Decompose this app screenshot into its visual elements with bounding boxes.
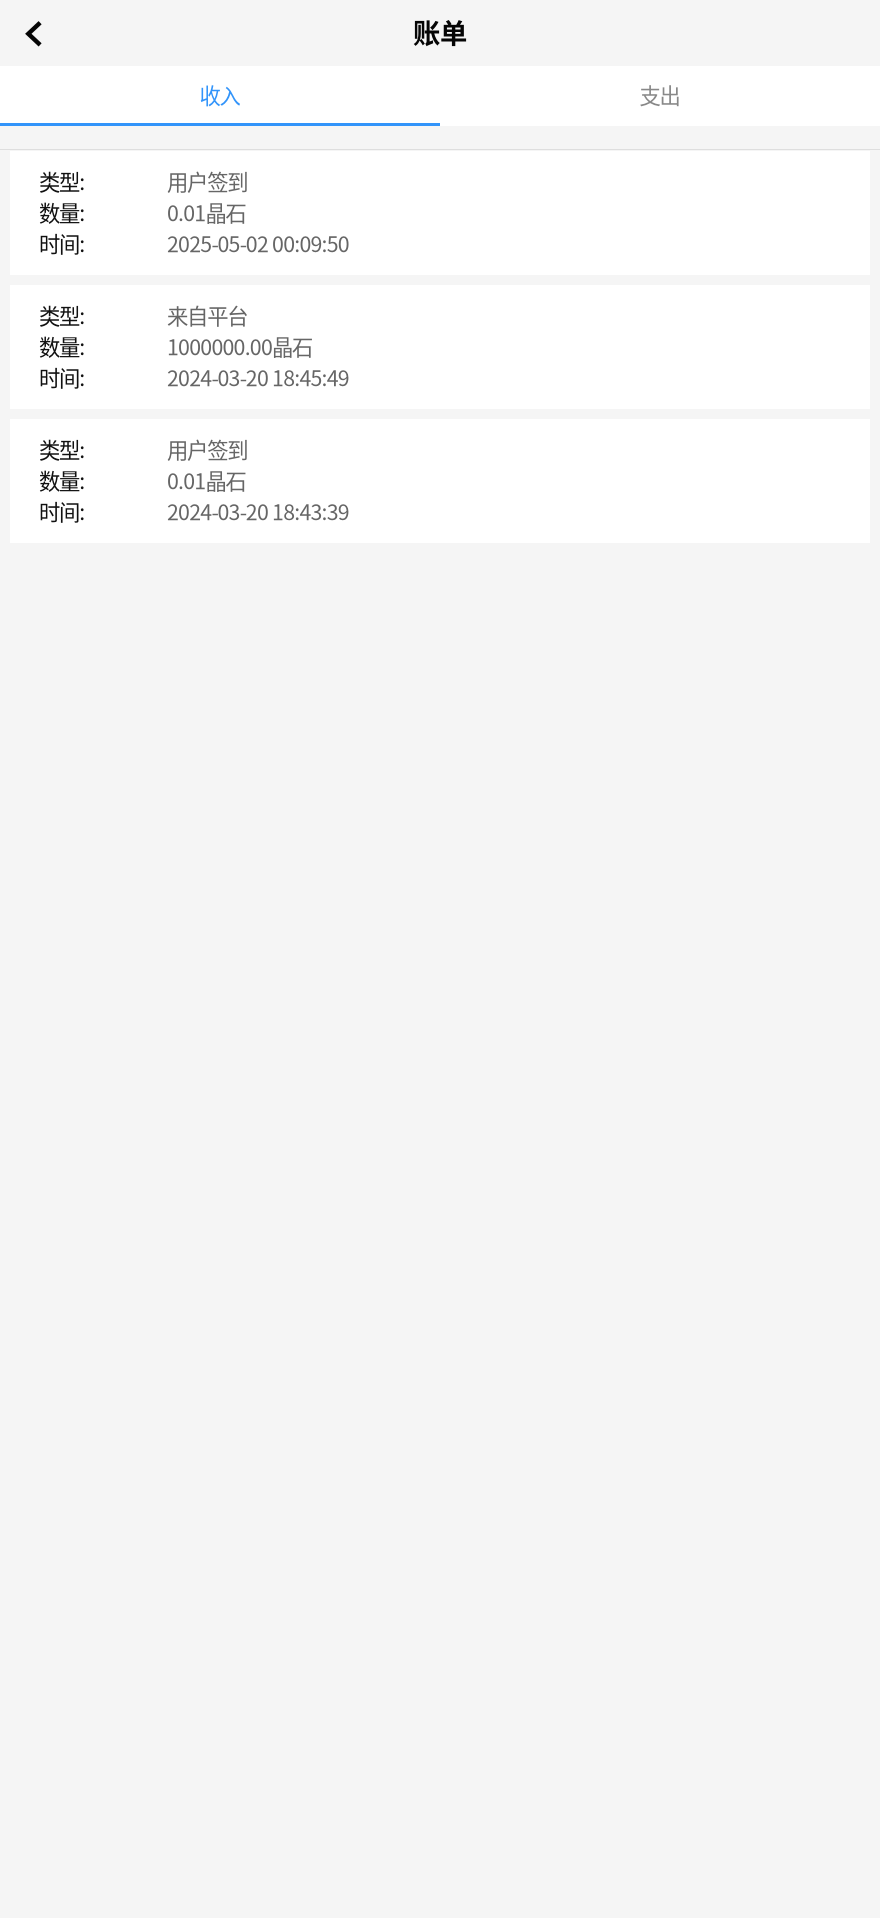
staticText: 用户签到 [167,434,248,464]
staticText: 来自平台 [167,300,248,330]
staticText: 时间: [39,496,85,526]
staticText: 时间: [39,228,85,258]
staticText: 2024-03-20 18:43:39 [167,496,350,526]
staticText: 2024-03-20 18:45:49 [167,362,350,392]
staticText: 收入 [199,79,241,110]
staticText: 用户签到 [167,166,248,196]
staticText: 1000000.00晶石 [167,331,313,361]
staticText: 支出 [639,79,681,110]
staticText: 账单 [413,12,467,51]
staticText: 数量: [39,331,85,361]
staticText: 类型: [39,434,85,464]
button[interactable]: 支出 [440,66,880,126]
staticText: 时间: [39,362,85,392]
button[interactable]: 收入 [0,66,440,126]
staticText: 0.01晶石 [167,197,246,227]
staticText: 0.01晶石 [167,465,246,495]
button[interactable]: 返回 [0,0,63,66]
staticText: 数量: [39,197,85,227]
staticText: 2025-05-02 00:09:50 [167,228,350,258]
staticText: 类型: [39,166,85,196]
staticText: 数量: [39,465,85,495]
staticText: 类型: [39,300,85,330]
